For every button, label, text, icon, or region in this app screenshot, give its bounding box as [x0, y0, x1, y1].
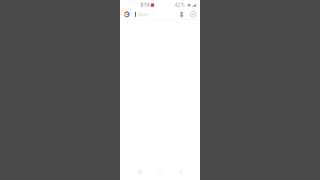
staticText: 42%	[174, 2, 185, 8]
button[interactable]: Google Lens	[190, 12, 200, 17]
staticText: Sear	[137, 11, 148, 18]
staticText: 8:14	[140, 2, 149, 8]
button[interactable]: Recent apps	[130, 164, 150, 180]
button[interactable]: Voice search	[178, 12, 190, 17]
button[interactable]: Google	[120, 11, 135, 18]
staticText: c	[151, 3, 153, 7]
button[interactable]: Sear	[135, 11, 178, 18]
